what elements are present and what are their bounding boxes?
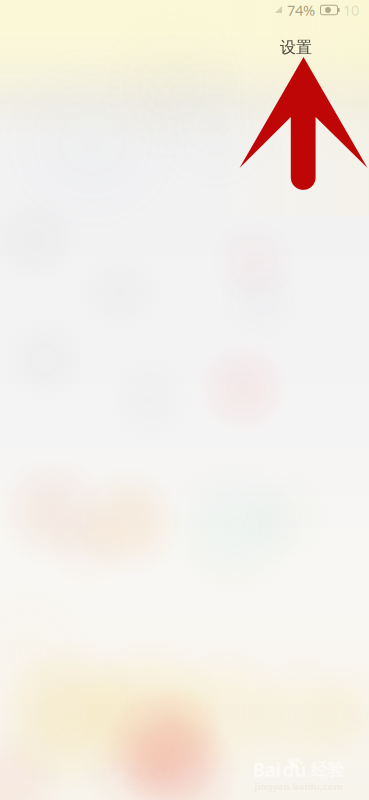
staticText: du — [282, 757, 306, 782]
staticText: Bai — [252, 757, 281, 782]
staticText: 74% — [287, 0, 315, 20]
staticText: jingyan.baidu.com — [254, 780, 342, 793]
staticText: 10 — [343, 0, 359, 20]
staticText: 设置 — [280, 38, 312, 57]
button[interactable]: 设置 — [274, 17, 318, 63]
staticText: 经验 — [310, 759, 344, 780]
